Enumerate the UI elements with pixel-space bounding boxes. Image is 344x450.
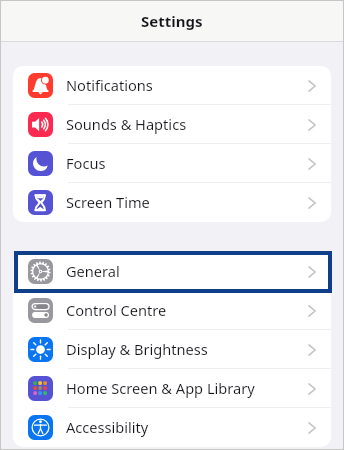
staticText: Settings — [141, 11, 203, 31]
button[interactable]: Focus — [13, 144, 331, 183]
staticText: Notifications — [66, 75, 153, 95]
button[interactable]: Accessibility — [13, 408, 331, 447]
staticText: Sounds & Haptics — [66, 114, 187, 134]
staticText: Home Screen & App Library — [66, 378, 255, 398]
staticText: Display & Brightness — [66, 339, 208, 359]
button[interactable]: Display & Brightness — [13, 330, 331, 369]
staticText: Focus — [66, 153, 106, 173]
staticText: Accessibility — [66, 417, 149, 437]
button[interactable]: Sounds & Haptics — [13, 105, 331, 144]
button[interactable]: Home Screen & App Library — [13, 369, 331, 408]
button[interactable]: Control Centre — [13, 291, 331, 330]
button[interactable]: Screen Time — [13, 183, 331, 222]
button[interactable]: General — [13, 252, 331, 291]
staticText: Control Centre — [66, 300, 167, 320]
staticText: Screen Time — [66, 192, 150, 212]
button[interactable]: Notifications — [13, 66, 331, 105]
staticText: General — [66, 261, 120, 281]
